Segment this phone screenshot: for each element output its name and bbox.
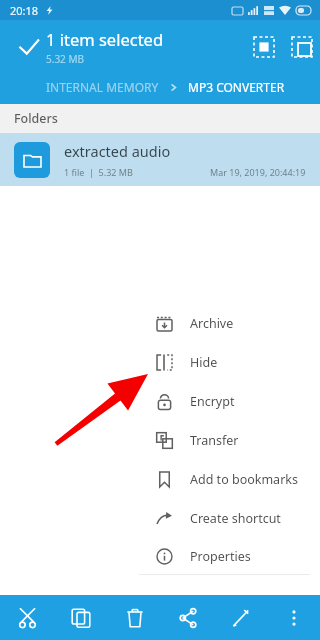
staticText: Encrypt xyxy=(190,393,235,410)
button[interactable]: Hide xyxy=(139,343,310,382)
button[interactable]: Select multiple xyxy=(282,27,320,67)
button[interactable]: Add to bookmarks xyxy=(139,460,310,499)
button[interactable]: Delete xyxy=(108,595,161,640)
staticText: 1 item selected xyxy=(46,28,164,50)
button[interactable]: Properties xyxy=(139,538,310,574)
button[interactable]: Cut xyxy=(0,595,54,640)
staticText: INTERNAL MEMORY xyxy=(46,79,159,95)
button[interactable]: Create shortcut xyxy=(139,499,310,538)
button[interactable]: Clear selection xyxy=(8,26,50,68)
staticText: Folders xyxy=(14,110,58,127)
staticText: 20:18 xyxy=(10,3,39,18)
staticText: Mar 19, 2019, 20:44:19 xyxy=(210,166,306,178)
staticText: 5.32 MB xyxy=(46,52,85,66)
staticText: Hide xyxy=(190,354,218,371)
button[interactable]: Share xyxy=(161,595,214,640)
button[interactable]: Select all xyxy=(244,27,284,67)
staticText: Transfer xyxy=(190,432,239,449)
staticText: Properties xyxy=(190,548,251,565)
button[interactable]: MP3 CONVERTER xyxy=(188,79,285,95)
staticText: Create shortcut xyxy=(190,510,281,527)
button[interactable]: Rename xyxy=(214,595,267,640)
button[interactable]: extracted audio xyxy=(0,133,320,186)
staticText: Add to bookmarks xyxy=(190,471,298,488)
button[interactable]: Archive xyxy=(139,304,310,343)
button[interactable]: INTERNAL MEMORY xyxy=(46,79,159,95)
staticText: extracted audio xyxy=(64,141,171,161)
button[interactable]: Encrypt xyxy=(139,382,310,421)
staticText: Archive xyxy=(190,315,234,332)
button[interactable]: Transfer xyxy=(139,421,310,460)
staticText: MP3 CONVERTER xyxy=(188,79,285,95)
button[interactable]: More options xyxy=(267,595,320,640)
staticText: 1 file | 5.32 MB xyxy=(64,166,133,178)
button[interactable]: Copy xyxy=(54,595,108,640)
